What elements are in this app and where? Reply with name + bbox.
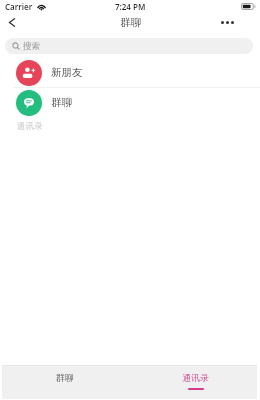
staticText: 群聊 (51, 96, 72, 109)
button[interactable]: More options (215, 14, 239, 31)
staticText: 通讯录 (182, 372, 209, 383)
staticText: 7:24 PM (115, 1, 146, 12)
button[interactable]: 新朋友 (0, 58, 260, 88)
button[interactable]: 群聊 (0, 88, 260, 118)
staticText: Carrier (5, 1, 33, 12)
staticText: 群聊 (56, 372, 74, 383)
button[interactable]: Back (0, 14, 23, 31)
button[interactable]: 搜索 (5, 38, 253, 54)
staticText: 通讯录 (17, 121, 43, 132)
staticText: 搜索 (23, 41, 40, 52)
button[interactable]: 通讯录 (130, 365, 260, 400)
staticText: 群聊 (120, 16, 141, 29)
button[interactable]: 群聊 (0, 365, 130, 400)
staticText: 新朋友 (51, 66, 83, 79)
